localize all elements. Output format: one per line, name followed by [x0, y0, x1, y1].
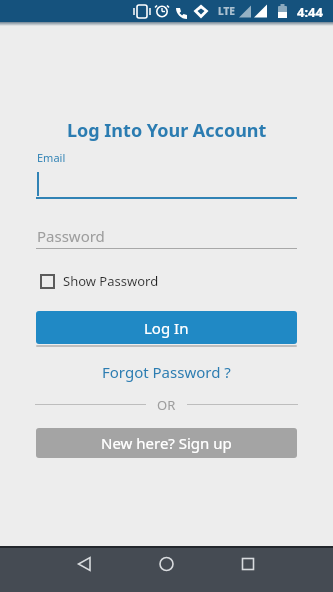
staticText: Email: [37, 150, 66, 165]
button[interactable]: [0, 546, 111, 592]
button[interactable]: [111, 546, 222, 592]
button[interactable]: Show Password: [40, 272, 159, 290]
staticText: Password: [37, 226, 105, 246]
button[interactable]: [222, 546, 333, 592]
staticText: LTE: [218, 4, 235, 18]
staticText: New here? Sign up: [101, 433, 232, 453]
button[interactable]: [36, 168, 297, 199]
staticText: 4:44: [297, 3, 323, 21]
button[interactable]: New here? Sign up: [36, 428, 297, 458]
button[interactable]: Forgot Password ?: [102, 362, 231, 382]
staticText: Show Password: [63, 272, 159, 290]
button[interactable]: Log In: [36, 311, 297, 344]
staticText: Log Into Your Account: [67, 118, 267, 143]
staticText: OR: [157, 396, 176, 414]
button[interactable]: Password: [36, 226, 297, 249]
staticText: Log In: [144, 318, 189, 338]
